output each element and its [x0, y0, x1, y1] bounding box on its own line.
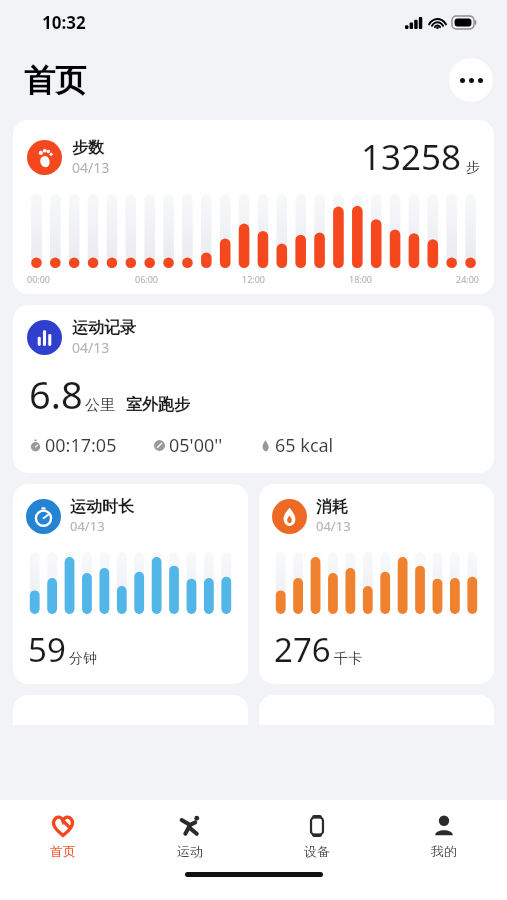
staticText: 05'00'' — [169, 433, 223, 458]
staticText: 00:17:05 — [45, 433, 117, 458]
staticText: 10:32 — [42, 11, 86, 34]
staticText: 04/13 — [70, 517, 105, 535]
staticText: 65 kcal — [275, 433, 334, 458]
staticText: 18:00 — [349, 273, 373, 285]
staticText: 公里 — [85, 396, 115, 415]
staticText: 04/13 — [316, 517, 351, 535]
staticText: 12:00 — [242, 273, 266, 285]
staticText: 13258 — [361, 133, 462, 181]
button[interactable]: 运动记录 — [13, 305, 494, 473]
button[interactable]: 运动时长 — [13, 484, 248, 684]
staticText: 分钟 — [69, 650, 97, 668]
staticText: 运动时长 — [70, 497, 134, 517]
staticText: 6.8 — [29, 368, 83, 420]
staticText: 59 — [28, 627, 66, 672]
staticText: 06:00 — [135, 273, 159, 285]
staticText: 04/13 — [72, 338, 110, 357]
staticText: 消耗 — [316, 497, 348, 517]
staticText: 运动记录 — [72, 318, 136, 338]
staticText: 24:00 — [456, 273, 480, 285]
button[interactable]: 我的 — [380, 800, 507, 872]
button[interactable]: More options — [449, 58, 493, 102]
staticText: 276 — [274, 627, 331, 672]
staticText: 首页 — [50, 843, 76, 859]
staticText: 04/13 — [72, 158, 110, 177]
staticText: 首页 — [24, 61, 86, 100]
button[interactable]: 消耗 — [259, 484, 494, 684]
button[interactable]: 步数 — [13, 120, 494, 294]
staticText: 设备 — [304, 843, 330, 859]
staticText: 步数 — [72, 138, 104, 158]
staticText: 千卡 — [334, 650, 362, 668]
staticText: 00:00 — [27, 273, 51, 285]
staticText: 步 — [466, 159, 480, 177]
staticText: 我的 — [431, 843, 457, 859]
button[interactable]: 首页 — [0, 800, 126, 872]
staticText: 运动 — [177, 843, 203, 859]
button[interactable]: 设备 — [253, 800, 380, 872]
staticText: 室外跑步 — [126, 395, 190, 415]
button[interactable]: 运动 — [126, 800, 253, 872]
